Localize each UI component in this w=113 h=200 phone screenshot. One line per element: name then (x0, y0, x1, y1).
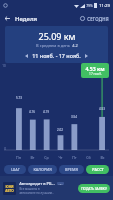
staticText: 3.54 (71, 115, 77, 119)
staticText: автосалоне по лучшим.. (19, 191, 54, 195)
staticText: 17 нояб. (89, 72, 102, 76)
button[interactable]: 4.53 км (81, 63, 109, 78)
button[interactable]: ПОДАТЬ ЗАЯВКУ (78, 184, 110, 193)
staticText: ПОДАТЬ ЗАЯВКУ (81, 187, 107, 191)
staticText: Пн (16, 155, 21, 160)
button[interactable]: СЕГОДНЯ (76, 11, 113, 26)
staticText: Ср (44, 155, 49, 160)
staticText: АВТО (5, 189, 14, 193)
staticText: 5.73 (16, 96, 22, 100)
staticText: 0 (4, 147, 6, 151)
staticText: РАССТ (92, 167, 104, 172)
staticText: 18+ (58, 182, 63, 185)
button[interactable]: Advertiser logo (3, 182, 16, 195)
staticText: КАЛОРИЯ (33, 167, 52, 172)
staticText: 4.53 (99, 107, 105, 111)
staticText: Все машины в (19, 187, 40, 191)
button[interactable]: ШАГ (4, 165, 26, 174)
button[interactable]: РАССТ (86, 165, 109, 174)
staticText: Чт (58, 155, 63, 160)
staticText: 11:29 (99, 3, 110, 9)
staticText: 25.09 км (38, 30, 76, 42)
button[interactable]: Back (0, 11, 15, 26)
staticText: ВРЕМЯ (65, 167, 78, 172)
staticText: 4.53 км (85, 65, 105, 72)
staticText: Вт (30, 155, 35, 160)
staticText: 4.19 (43, 110, 49, 114)
staticText: ЮНИ (5, 185, 14, 189)
button[interactable]: ВРЕМЯ (59, 165, 84, 174)
staticText: 2.02 (57, 128, 63, 132)
staticText: 79% (86, 3, 93, 8)
staticText: Сб (86, 155, 91, 160)
staticText: В среднем в день (36, 43, 70, 48)
staticText: СЕГОДНЯ (87, 16, 109, 22)
staticText: 4.16 (29, 110, 35, 114)
staticText: Неделя (15, 15, 37, 23)
button[interactable]: Previous week (22, 51, 31, 60)
staticText: 4.2 (72, 43, 78, 48)
staticText: Автокредит в РБ... (19, 181, 55, 186)
button[interactable]: КАЛОРИЯ (28, 165, 57, 174)
staticText: Пт (72, 155, 77, 160)
button[interactable]: Next week (82, 51, 91, 60)
staticText: Вс (100, 155, 105, 160)
staticText: ШАГ (11, 167, 20, 172)
staticText: 10 (2, 64, 6, 68)
staticText: 11 нояб. - 17 нояб. (32, 52, 81, 59)
